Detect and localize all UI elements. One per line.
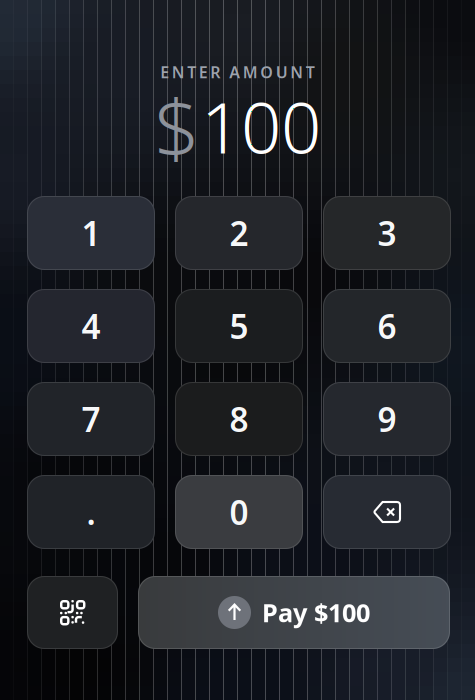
button[interactable]: Scan QR code xyxy=(27,576,118,649)
button[interactable]: 9 xyxy=(323,382,451,456)
button[interactable]: 0 xyxy=(175,475,303,549)
staticText: 5 xyxy=(229,304,248,348)
button[interactable]: Pay $100 xyxy=(138,576,450,649)
staticText: 4 xyxy=(81,304,100,348)
button[interactable]: 5 xyxy=(175,289,303,363)
staticText: $ xyxy=(154,73,200,179)
staticText: 6 xyxy=(377,304,396,348)
staticText: 7 xyxy=(81,397,100,441)
button[interactable]: 1 xyxy=(27,196,155,270)
button[interactable]: . xyxy=(27,475,155,549)
button[interactable]: 8 xyxy=(175,382,303,456)
button[interactable]: 6 xyxy=(323,289,451,363)
button[interactable]: Delete xyxy=(323,475,451,549)
button[interactable]: 3 xyxy=(323,196,451,270)
staticText: Pay $100 xyxy=(262,596,370,629)
staticText: 3 xyxy=(377,211,396,255)
button[interactable]: 4 xyxy=(27,289,155,363)
staticText: 8 xyxy=(229,397,248,441)
staticText: 100 xyxy=(201,79,321,173)
staticText: 1 xyxy=(81,211,100,255)
staticText: 9 xyxy=(377,397,396,441)
staticText: 0 xyxy=(229,490,248,534)
staticText: ENTER AMOUNT xyxy=(160,61,315,83)
button[interactable]: 7 xyxy=(27,382,155,456)
staticText: . xyxy=(86,490,95,534)
button[interactable]: 2 xyxy=(175,196,303,270)
staticText: 2 xyxy=(229,211,248,255)
